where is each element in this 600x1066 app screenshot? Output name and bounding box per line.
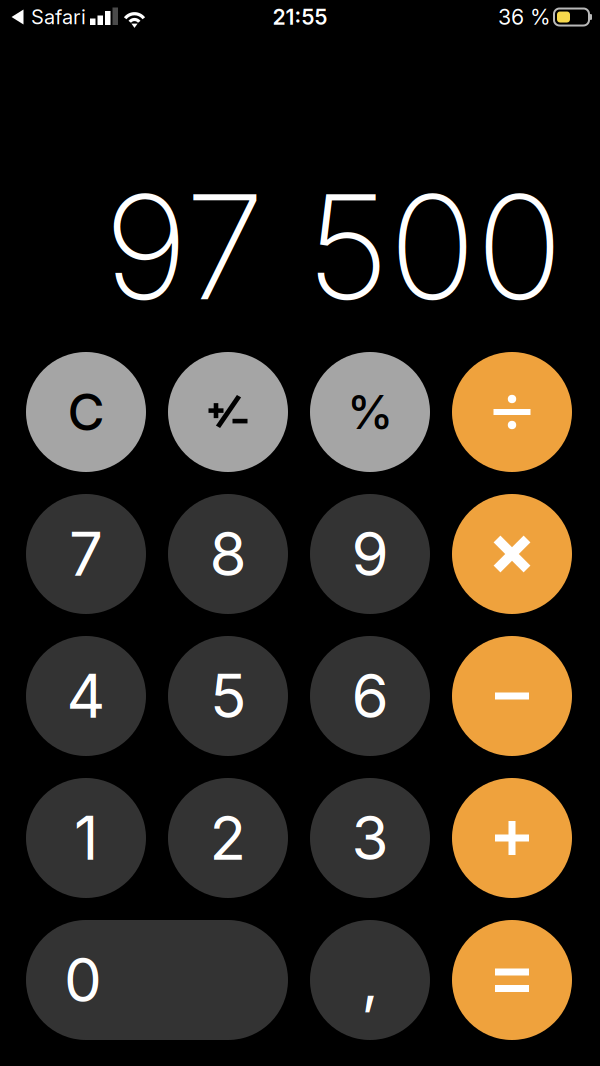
button[interactable]: 0 [26, 920, 288, 1040]
staticText: 9 [351, 518, 388, 590]
button[interactable]: 7 [26, 494, 146, 614]
button[interactable]: 2 [168, 778, 288, 898]
button[interactable]: 5 [168, 636, 288, 756]
staticText: 97 500 [104, 160, 563, 334]
button[interactable]: 9 [310, 494, 430, 614]
staticText: 21:55 [272, 4, 327, 30]
staticText: 4 [66, 660, 105, 732]
button[interactable]: 8 [168, 494, 288, 614]
staticText: 0 [64, 944, 102, 1016]
button[interactable]: Equals [452, 920, 572, 1040]
button[interactable]: C [26, 352, 146, 472]
button[interactable]: Multiply [452, 494, 572, 614]
button[interactable]: , [310, 920, 430, 1040]
button[interactable]: 3 [310, 778, 430, 898]
staticText: 3 [351, 802, 388, 874]
staticText: 36 % [498, 4, 551, 30]
button[interactable]: 6 [310, 636, 430, 756]
button[interactable]: % [310, 352, 430, 472]
button[interactable]: Divide [452, 352, 572, 472]
button[interactable]: Subtract [452, 636, 572, 756]
staticText: 7 [69, 518, 103, 590]
staticText: 5 [210, 660, 246, 732]
staticText: 8 [209, 518, 246, 590]
staticText: Safari [31, 5, 86, 29]
button[interactable]: Plus minus [168, 352, 288, 472]
staticText: 2 [209, 802, 246, 874]
button[interactable]: 4 [26, 636, 146, 756]
staticText: % [347, 384, 393, 440]
staticText: 1 [74, 802, 98, 874]
staticText: 6 [351, 660, 388, 732]
button[interactable]: 1 [26, 778, 146, 898]
button[interactable]: Add [452, 778, 572, 898]
staticText: C [67, 381, 104, 443]
staticText: , [361, 944, 378, 1016]
